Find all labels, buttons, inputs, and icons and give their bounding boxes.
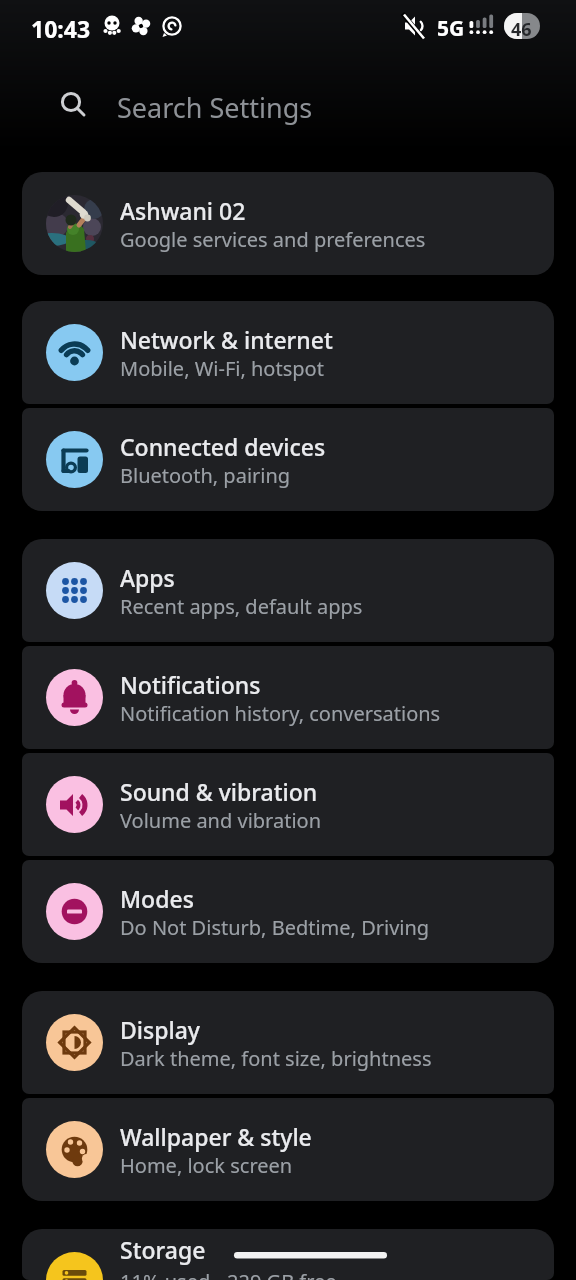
button[interactable]: Connected devices: [22, 408, 554, 511]
staticText: Display: [120, 1014, 200, 1045]
staticText: 46: [511, 17, 532, 42]
button[interactable]: Sound & vibration: [22, 753, 554, 856]
staticText: Dark theme, font size, brightness: [120, 1045, 432, 1072]
button[interactable]: Search Settings: [0, 52, 576, 158]
staticText: 5G: [437, 14, 465, 43]
staticText: Modes: [120, 883, 194, 914]
staticText: Storage: [120, 1234, 206, 1265]
button[interactable]: Display: [22, 991, 554, 1094]
staticText: 10:43: [31, 13, 91, 44]
staticText: Bluetooth, pairing: [120, 462, 291, 489]
button[interactable]: Apps: [22, 539, 554, 642]
staticText: Connected devices: [120, 431, 326, 462]
staticText: Google services and preferences: [120, 226, 426, 253]
button[interactable]: Network & internet: [22, 301, 554, 404]
staticText: Volume and vibration: [120, 807, 322, 834]
staticText: Notifications: [120, 669, 261, 700]
staticText: 11% used - 229 GB free: [120, 1268, 337, 1280]
staticText: Recent apps, default apps: [120, 593, 363, 620]
button[interactable]: Wallpaper & style: [22, 1098, 554, 1201]
staticText: Wallpaper & style: [120, 1121, 312, 1152]
staticText: Apps: [120, 562, 175, 593]
button[interactable]: Modes: [22, 860, 554, 963]
staticText: Ashwani 02: [120, 195, 246, 226]
staticText: Network & internet: [120, 324, 333, 355]
staticText: Notification history, conversations: [120, 700, 441, 727]
staticText: Search Settings: [117, 89, 313, 126]
staticText: Mobile, Wi-Fi, hotspot: [120, 355, 324, 382]
staticText: Do Not Disturb, Bedtime, Driving: [120, 914, 430, 941]
button[interactable]: Storage: [22, 1229, 554, 1280]
button[interactable]: Notifications: [22, 646, 554, 749]
staticText: Sound & vibration: [120, 776, 318, 807]
staticText: Home, lock screen: [120, 1152, 293, 1179]
button[interactable]: Ashwani 02: [22, 172, 554, 275]
